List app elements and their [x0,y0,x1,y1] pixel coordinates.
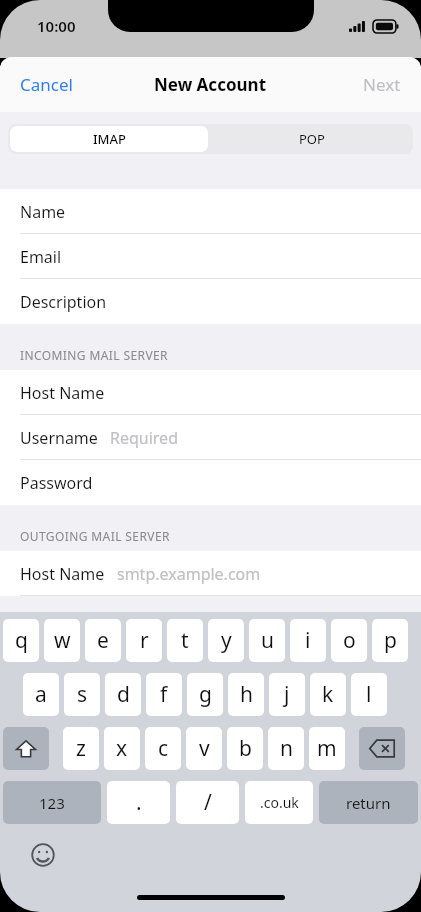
staticText: Description [20,291,107,313]
button[interactable]: d [105,673,141,716]
staticText: h [240,680,253,709]
button[interactable]: j [269,673,305,716]
staticText: b [239,734,252,763]
button[interactable]: Description [0,279,421,324]
button[interactable]: Next [343,63,421,106]
staticText: d [117,680,130,709]
staticText: p [384,626,397,655]
button[interactable]: e [85,619,121,662]
staticText: Cancel [20,73,73,96]
staticText: v [199,734,210,763]
staticText: smtp.example.com [117,563,261,585]
button[interactable]: k [310,673,346,716]
button[interactable]: . [107,781,170,824]
button[interactable]: Emoji [28,840,58,870]
staticText: y [221,626,232,655]
staticText: k [322,680,334,709]
staticText: l [366,680,372,709]
button[interactable]: s [64,673,100,716]
staticText: r [140,626,149,655]
staticText: Name [20,201,66,223]
staticText: u [261,626,274,655]
button[interactable]: POP [210,124,413,154]
staticText: q [15,626,28,655]
button[interactable]: 123 [3,781,101,824]
button[interactable]: c [145,727,181,770]
staticText: return [346,793,391,813]
button[interactable]: Host Name [0,551,421,596]
staticText: t [181,626,189,655]
button[interactable]: Email [0,234,421,279]
button[interactable]: i [290,619,326,662]
button[interactable]: n [268,727,304,770]
staticText: o [343,626,356,655]
button[interactable]: p [372,619,408,662]
button[interactable]: l [351,673,387,716]
button[interactable]: z [63,727,99,770]
staticText: POP [299,130,325,148]
staticText: Required [110,427,178,449]
button[interactable]: t [167,619,203,662]
staticText: INCOMING MAIL SERVER [20,347,168,363]
staticText: IMAP [93,130,126,148]
staticText: m [317,734,337,763]
button[interactable]: Name [0,189,421,234]
button[interactable]: .co.uk [245,781,313,824]
button[interactable]: m [309,727,345,770]
staticText: Next [363,73,401,96]
button[interactable]: Shift [3,727,49,770]
button[interactable]: Host Name [0,370,421,415]
button[interactable]: a [23,673,59,716]
staticText: OUTGOING MAIL SERVER [20,528,170,544]
button[interactable]: q [3,619,39,662]
staticText: w [54,626,71,655]
staticText: f [160,680,168,709]
staticText: i [305,626,311,655]
staticText: Host Name [20,563,105,585]
staticText: 123 [39,793,65,813]
button[interactable]: o [331,619,367,662]
button[interactable]: u [249,619,285,662]
staticText: a [35,680,47,709]
staticText: Host Name [20,382,105,404]
staticText: n [280,734,293,763]
staticText: s [77,680,88,709]
button[interactable]: y [208,619,244,662]
button[interactable]: f [146,673,182,716]
button[interactable]: w [44,619,80,662]
button[interactable]: IMAP [10,126,208,152]
staticText: 10:00 [37,16,76,36]
button[interactable]: b [227,727,263,770]
staticText: Email [20,246,62,268]
button[interactable]: Password [0,460,421,505]
staticText: x [116,734,128,763]
button[interactable]: Cancel [0,63,93,106]
staticText: . [136,788,142,817]
button[interactable]: Backspace [359,727,405,770]
staticText: e [97,626,109,655]
staticText: g [199,680,212,709]
staticText: / [204,788,212,817]
staticText: Username [20,427,98,449]
button[interactable]: / [176,781,239,824]
staticText: New Account [154,73,267,96]
button[interactable]: v [186,727,222,770]
button[interactable]: return [319,781,418,824]
button[interactable]: g [187,673,223,716]
staticText: z [76,734,86,763]
button[interactable]: r [126,619,162,662]
button[interactable]: Username [0,415,421,460]
staticText: j [284,680,290,709]
button[interactable]: h [228,673,264,716]
staticText: c [158,734,169,763]
staticText: .co.uk [260,793,299,812]
button[interactable]: x [104,727,140,770]
staticText: Password [20,472,93,494]
